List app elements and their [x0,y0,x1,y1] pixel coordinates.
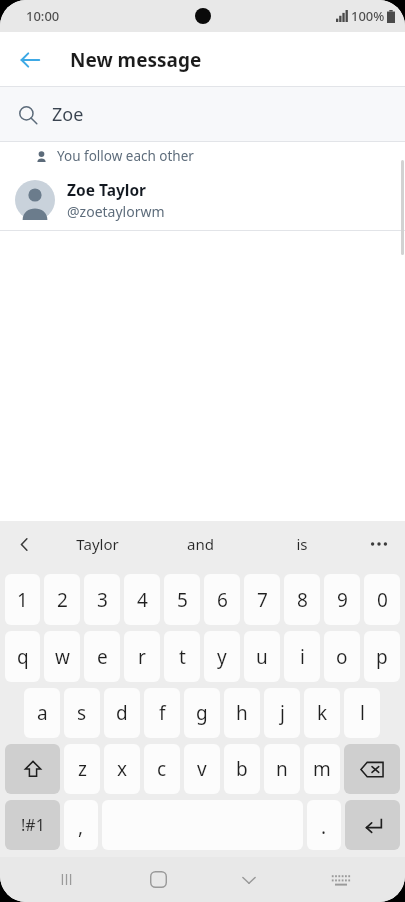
staticText: j [280,700,285,726]
staticText: You follow each other [57,147,194,165]
button[interactable]: w [44,631,80,682]
button[interactable]: Enter [345,800,400,850]
button[interactable]: g [184,688,220,738]
staticText: n [276,756,288,782]
staticText: w [55,644,70,670]
staticText: q [17,644,29,670]
button[interactable]: s [64,688,100,738]
button[interactable]: Change keyboard [312,857,370,902]
staticText: , [78,814,84,840]
button[interactable]: y [204,631,240,682]
button[interactable]: v [184,744,220,794]
staticText: s [77,700,87,726]
staticText: c [157,756,167,782]
staticText: z [78,756,87,782]
staticText: @zoetaylorwm [67,202,165,221]
button[interactable]: Backspace [344,744,400,794]
button[interactable]: 1 [5,574,40,625]
button[interactable]: z [64,744,100,794]
button[interactable]: a [24,688,60,738]
staticText: 4 [137,587,148,613]
button[interactable]: d [104,688,140,738]
button[interactable]: b [224,744,260,794]
button[interactable]: Taylor [46,521,149,567]
button[interactable]: i [284,631,320,682]
staticText: 7 [257,587,268,613]
button[interactable]: Previous suggestions [6,526,42,562]
staticText: g [196,700,208,726]
staticText: !#1 [21,814,45,836]
button[interactable]: , [64,800,98,850]
button[interactable]: More options [361,526,397,562]
button[interactable]: Hide keyboard [220,857,278,902]
staticText: e [97,644,108,670]
staticText: v [197,756,207,782]
button[interactable]: Home [129,857,187,902]
button[interactable]: 6 [204,574,240,625]
staticText: a [37,700,48,726]
button[interactable]: n [264,744,300,794]
staticText: f [159,700,166,726]
button[interactable]: f [144,688,180,738]
staticText: Taylor [76,534,119,554]
staticText: 1 [17,587,28,613]
staticText: m [313,756,331,782]
staticText: 9 [337,587,348,613]
button[interactable]: 7 [244,574,280,625]
staticText: t [179,644,186,670]
button[interactable]: Zoe Taylor [0,170,405,230]
button[interactable]: Zoe [0,87,405,142]
button[interactable]: c [144,744,180,794]
button[interactable]: x [104,744,140,794]
button[interactable]: j [264,688,300,738]
staticText: 0 [377,587,388,613]
staticText: and [187,534,214,554]
button[interactable]: 4 [124,574,160,625]
staticText: Zoe [52,102,84,127]
button[interactable]: !#1 [5,800,60,850]
button[interactable]: Shift [5,744,60,794]
staticText: p [376,644,388,670]
staticText: r [138,644,146,670]
staticText: 100% [351,7,385,25]
staticText: d [116,700,128,726]
staticText: h [236,700,248,726]
button[interactable]: 9 [324,574,360,625]
button[interactable]: u [244,631,280,682]
staticText: . [321,814,327,840]
button[interactable]: 8 [284,574,320,625]
staticText: l [360,700,365,726]
staticText: y [217,644,227,670]
staticText: 2 [57,587,68,613]
button[interactable]: o [324,631,360,682]
staticText: 10:00 [26,7,60,25]
staticText: o [336,644,348,670]
button[interactable]: Recents [37,857,95,902]
button[interactable]: 3 [84,574,120,625]
button[interactable]: 0 [364,574,400,625]
button[interactable]: . [307,800,341,850]
button[interactable]: p [364,631,400,682]
button[interactable]: h [224,688,260,738]
staticText: b [236,756,248,782]
button[interactable]: e [84,631,120,682]
button[interactable]: l [344,688,380,738]
button[interactable]: k [304,688,340,738]
button[interactable]: 2 [44,574,80,625]
staticText: x [117,756,128,782]
staticText: u [256,644,268,670]
staticText: k [317,700,328,726]
button[interactable]: t [164,631,200,682]
staticText: New message [70,47,202,73]
staticText: Zoe Taylor [67,179,147,200]
button[interactable]: and [149,521,251,567]
button[interactable]: m [304,744,340,794]
button[interactable]: is [251,521,353,567]
button[interactable]: q [5,631,40,682]
staticText: is [296,534,308,554]
button[interactable]: Back [8,38,52,82]
staticText: 8 [297,587,308,613]
button[interactable]: r [124,631,160,682]
button[interactable]: 5 [164,574,200,625]
